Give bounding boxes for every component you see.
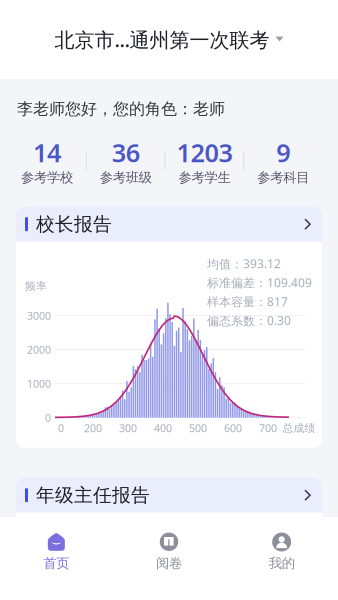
staticText: 北京市...通州第一次联考 [54, 26, 269, 53]
staticText: 样本容量：817 [207, 293, 288, 309]
staticText: 700 [259, 421, 277, 435]
staticText: 1000 [27, 377, 51, 391]
staticText: 0 [58, 421, 64, 435]
staticText: 李老师您好，您的角色：老师 [17, 99, 225, 119]
staticText: 400 [154, 421, 172, 435]
staticText: 参考学校 [21, 169, 73, 186]
staticText: 标准偏差：109.409 [207, 275, 312, 290]
staticText: 600 [224, 421, 242, 435]
button[interactable]: 我的 [225, 527, 338, 576]
staticText: 3000 [27, 309, 51, 323]
staticText: 2000 [27, 343, 51, 357]
staticText: 阅卷 [156, 555, 182, 571]
button[interactable]: 校长报告 [16, 207, 322, 242]
staticText: 0 [45, 411, 51, 425]
staticText: 14 [33, 136, 61, 169]
staticText: 9 [276, 136, 290, 169]
staticText: 参考科目 [257, 169, 309, 186]
button[interactable]: 年级主任报告 [16, 478, 322, 513]
staticText: 均值：393.12 [207, 256, 281, 272]
staticText: 200 [84, 421, 102, 435]
staticText: 偏态系数：0.30 [207, 312, 291, 328]
staticText: 参考班级 [100, 169, 152, 186]
staticText: 年级主任报告 [36, 484, 150, 507]
staticText: 首页 [43, 555, 69, 571]
staticText: 参考学生 [178, 169, 230, 186]
staticText: 1203 [176, 136, 232, 169]
button[interactable]: 阅卷 [113, 527, 225, 576]
staticText: 300 [119, 421, 137, 435]
staticText: 总成绩 [282, 422, 315, 435]
staticText: 36 [112, 136, 140, 169]
staticText: 频率 [25, 280, 47, 293]
staticText: 校长报告 [36, 213, 112, 236]
staticText: 500 [189, 421, 207, 435]
staticText: 我的 [269, 555, 295, 571]
button[interactable]: 北京市...通州第一次联考 [0, 0, 338, 79]
button[interactable]: 首页 [0, 527, 113, 576]
